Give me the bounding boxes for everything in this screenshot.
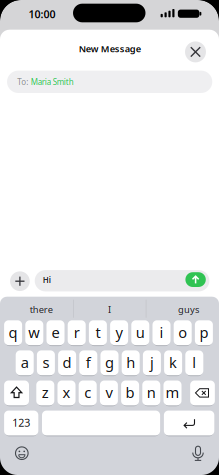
button[interactable]: g — [0, 0, 219, 475]
button[interactable]: k — [0, 0, 219, 475]
button[interactable] — [0, 0, 219, 475]
button[interactable]: i — [0, 0, 219, 475]
staticText: 123 — [12, 415, 30, 430]
button[interactable] — [0, 0, 219, 475]
button[interactable]: p — [0, 0, 219, 475]
button[interactable]: b — [0, 0, 219, 475]
staticText: f — [86, 353, 91, 372]
button[interactable]: w — [0, 0, 219, 475]
staticText: 10:00 — [28, 7, 55, 21]
staticText: a — [21, 353, 29, 372]
staticText: z — [42, 383, 49, 402]
button[interactable]: j — [0, 0, 219, 475]
button[interactable]: z — [0, 0, 219, 475]
staticText: q — [9, 322, 18, 342]
button[interactable]: r — [0, 0, 219, 475]
staticText: u — [136, 322, 145, 342]
staticText: n — [147, 383, 156, 402]
button[interactable]: s — [0, 0, 219, 475]
staticText: p — [199, 322, 208, 342]
button[interactable]: y — [0, 0, 219, 475]
button[interactable]: e — [0, 0, 219, 475]
button[interactable]: f — [0, 0, 219, 475]
staticText: there — [30, 303, 53, 315]
staticText: r — [74, 322, 80, 342]
button[interactable]: guys — [0, 0, 219, 475]
staticText: w — [28, 322, 40, 342]
staticText: y — [116, 322, 123, 342]
button[interactable]: a — [0, 0, 219, 475]
button[interactable]: v — [0, 0, 219, 475]
button[interactable]: m — [0, 0, 219, 475]
button[interactable]: u — [0, 0, 219, 475]
staticText: t — [95, 322, 100, 342]
staticText: New Message — [79, 42, 141, 55]
button[interactable]: 123 — [0, 0, 219, 475]
button[interactable]: n — [0, 0, 219, 475]
staticText: e — [51, 322, 59, 342]
staticText: g — [105, 353, 114, 372]
button[interactable]: t — [0, 0, 219, 475]
staticText: o — [178, 322, 187, 342]
button[interactable]: Hi — [0, 0, 219, 475]
button[interactable]: d — [0, 0, 219, 475]
staticText: To: — [17, 77, 28, 87]
staticText: i — [159, 322, 163, 342]
button[interactable]: c — [0, 0, 219, 475]
staticText: d — [63, 353, 72, 372]
button[interactable]: o — [0, 0, 219, 475]
button[interactable]: there — [0, 0, 219, 475]
staticText: j — [150, 353, 154, 372]
button[interactable]: x — [0, 0, 219, 475]
button[interactable] — [0, 0, 219, 475]
staticText: b — [126, 383, 135, 402]
button[interactable]: To: — [0, 0, 219, 475]
staticText: h — [126, 353, 135, 372]
staticText: m — [165, 383, 179, 402]
button[interactable]: l — [0, 0, 219, 475]
button[interactable]: h — [0, 0, 219, 475]
staticText: v — [105, 383, 112, 402]
button[interactable]: I — [0, 0, 219, 475]
staticText: s — [42, 353, 49, 372]
button[interactable] — [0, 0, 219, 475]
button[interactable] — [0, 0, 219, 475]
button[interactable] — [0, 0, 219, 475]
staticText: x — [62, 383, 70, 402]
button[interactable]: q — [0, 0, 219, 475]
staticText: c — [84, 383, 91, 402]
staticText: guys — [178, 303, 199, 315]
staticText: l — [192, 353, 196, 372]
button[interactable] — [0, 0, 219, 475]
staticText: I — [108, 303, 111, 315]
staticText: Hi — [43, 274, 51, 285]
staticText: Maria Smith — [31, 77, 74, 87]
staticText: k — [169, 353, 177, 372]
button[interactable] — [0, 0, 219, 475]
button[interactable] — [0, 0, 219, 475]
